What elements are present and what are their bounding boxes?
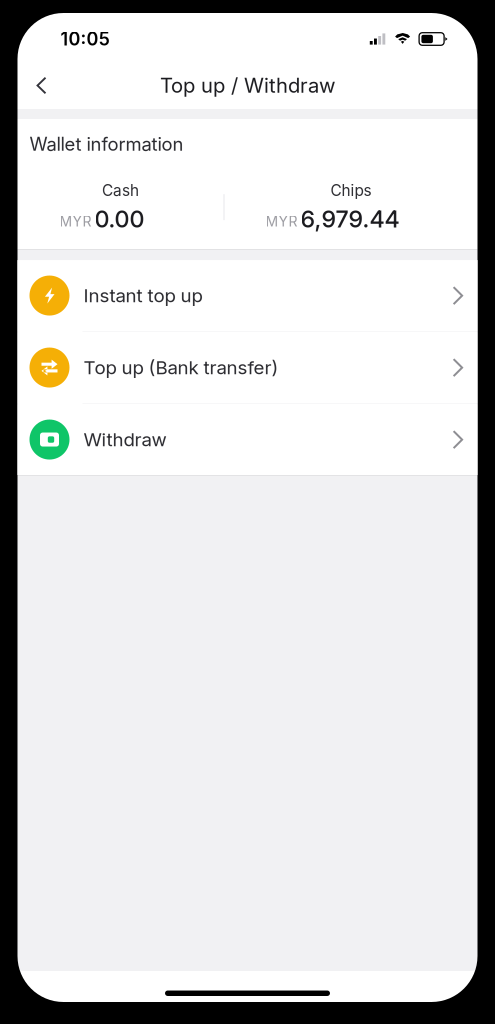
staticText: Chips [330, 181, 371, 200]
staticText: Top up / Withdraw [160, 73, 335, 98]
staticText: 10:05 [60, 28, 109, 50]
button[interactable]: Instant top up [17, 260, 477, 331]
staticText: 6,979.44 [300, 205, 399, 233]
staticText: MYR [59, 213, 91, 230]
staticText: MYR [265, 213, 297, 230]
staticText: Wallet information [29, 133, 183, 155]
button[interactable]: Withdraw [17, 404, 477, 475]
button[interactable]: Top up (Bank transfer) [17, 332, 477, 403]
staticText: Cash [102, 181, 139, 200]
button[interactable]: Back [19, 63, 63, 107]
staticText: Top up (Bank transfer) [83, 356, 278, 379]
staticText: Withdraw [83, 428, 166, 451]
staticText: Instant top up [83, 284, 202, 307]
staticText: 0.00 [94, 205, 144, 233]
